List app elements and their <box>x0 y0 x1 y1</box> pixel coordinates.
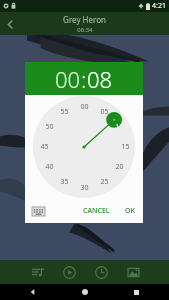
button[interactable]: Back <box>14 284 52 300</box>
button[interactable]: Home <box>66 284 104 300</box>
button[interactable]: 08 <box>87 64 113 94</box>
staticText: 20 <box>115 162 124 172</box>
staticText: 30 <box>80 183 89 193</box>
button[interactable]: 00 <box>33 96 135 198</box>
staticText: : <box>81 64 87 94</box>
button[interactable]: Gallery <box>117 260 149 284</box>
staticText: OK <box>125 206 135 216</box>
button[interactable]: Recent apps <box>117 284 155 300</box>
button[interactable]: OK <box>122 204 138 218</box>
staticText: 55 <box>60 107 69 117</box>
button[interactable]: Timer <box>85 260 117 284</box>
staticText: 35 <box>60 177 69 187</box>
button[interactable]: 00 <box>55 64 81 94</box>
staticText: 4:21 <box>152 1 166 11</box>
staticText: CANCEL <box>83 206 110 216</box>
staticText: 45 <box>40 142 49 152</box>
button[interactable]: Back <box>0 14 20 34</box>
staticText: 06:34 <box>77 26 93 34</box>
staticText: 15 <box>121 142 130 152</box>
staticText: 05 <box>100 107 109 117</box>
staticText: 25 <box>100 177 109 187</box>
button[interactable]: CANCEL <box>80 204 113 218</box>
button[interactable]: Playlist <box>21 260 53 284</box>
staticText: Grey Heron <box>63 14 106 25</box>
staticText: 00 <box>80 102 89 112</box>
staticText: 50 <box>45 122 54 132</box>
staticText: 10 <box>115 122 124 132</box>
staticText: 40 <box>45 162 54 172</box>
button[interactable]: Play <box>53 260 85 284</box>
button[interactable]: Switch to keyboard input <box>29 203 47 219</box>
